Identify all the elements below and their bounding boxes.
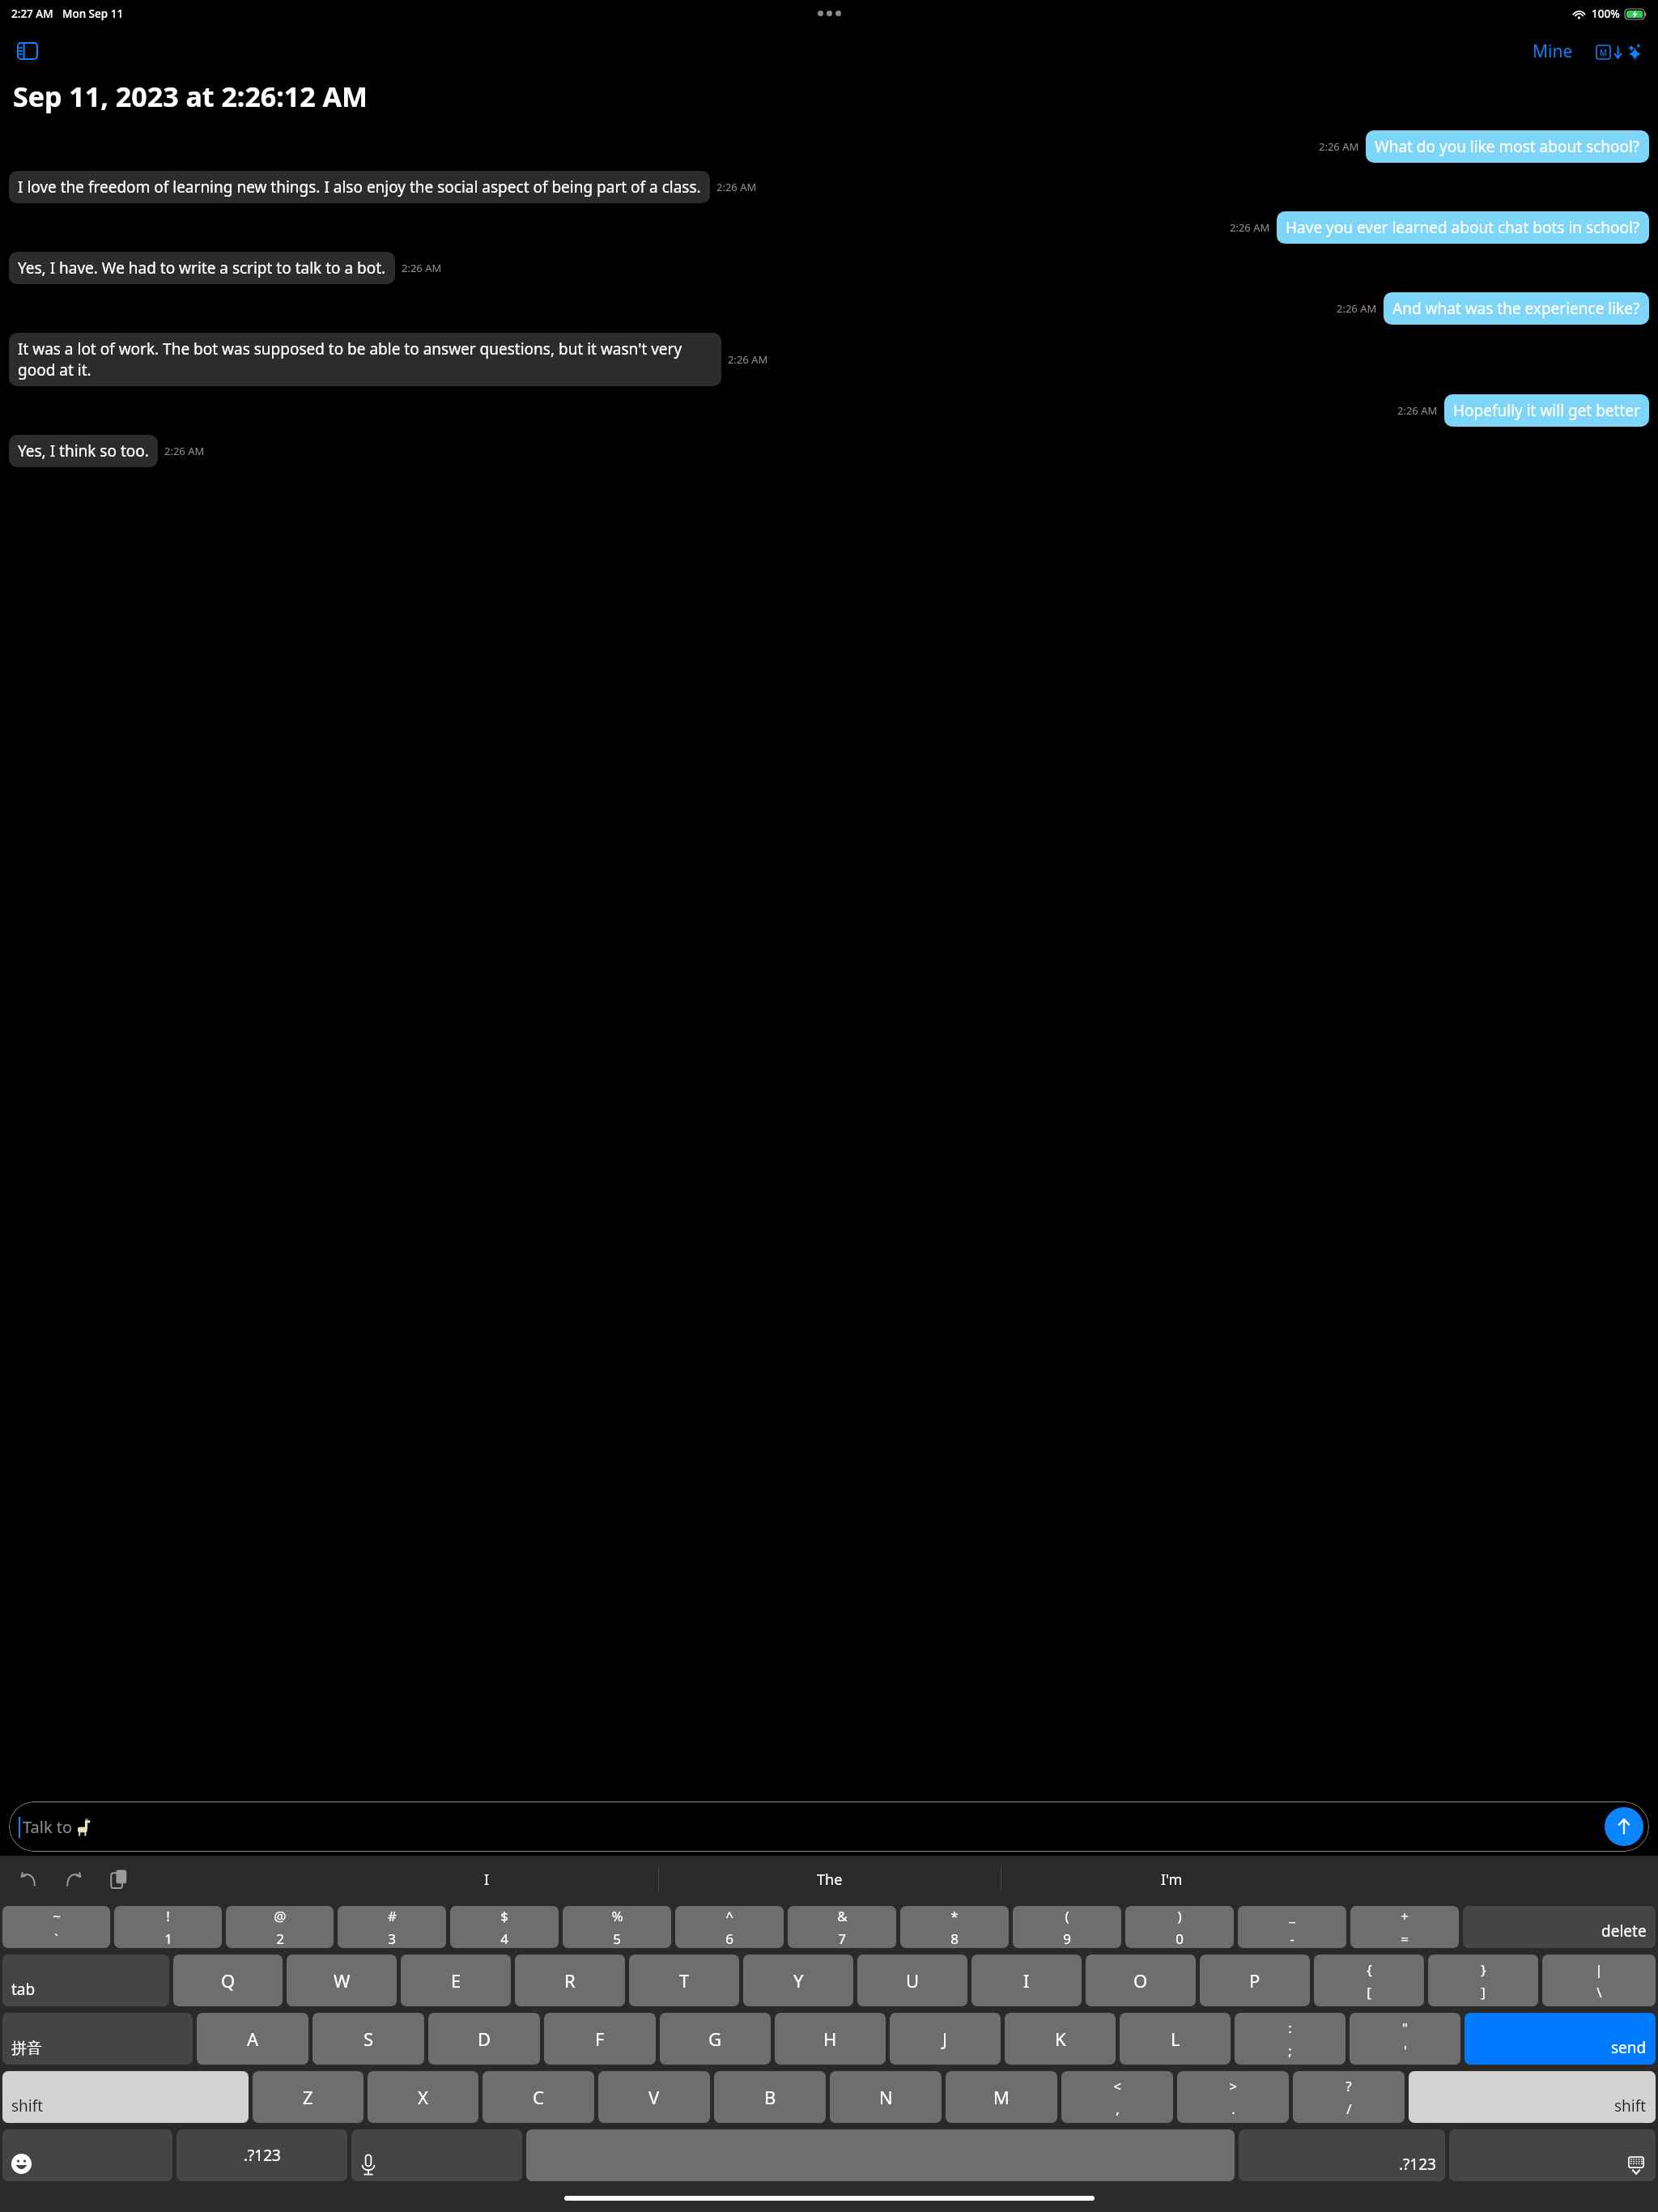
button[interactable]: Show sidebar: [10, 33, 45, 69]
button[interactable]: 2:26 AM: [1319, 130, 1649, 163]
button[interactable]: I: [315, 1856, 658, 1903]
button[interactable]: [526, 2129, 1235, 2181]
button[interactable]: G: [660, 2013, 771, 2065]
button[interactable]: &: [788, 1906, 896, 1948]
button[interactable]: C: [483, 2071, 594, 2123]
button[interactable]: <: [1061, 2071, 1173, 2123]
button[interactable]: .?123: [1239, 2129, 1445, 2181]
button[interactable]: U: [857, 1955, 967, 2006]
button[interactable]: E: [401, 1955, 511, 2006]
button[interactable]: ~: [2, 1906, 110, 1948]
button[interactable]: I: [971, 1955, 1082, 2006]
button[interactable]: kbd: [1449, 2129, 1656, 2181]
staticText: !: [166, 1907, 170, 1925]
button[interactable]: Talk to: [9, 1802, 1649, 1852]
button[interactable]: H: [775, 2013, 886, 2065]
staticText: ;: [1288, 2041, 1292, 2060]
button[interactable]: P: [1200, 1955, 1310, 2006]
button[interactable]: +: [1350, 1906, 1459, 1948]
staticText: 0: [1175, 1929, 1184, 1948]
button[interactable]: A: [197, 2013, 308, 2065]
button[interactable]: delete: [1463, 1906, 1656, 1948]
button[interactable]: F: [544, 2013, 656, 2065]
button[interactable]: >: [1177, 2071, 1289, 2123]
staticText: {: [1367, 1960, 1372, 1979]
button[interactable]: ": [1350, 2013, 1460, 2065]
button[interactable]: $: [450, 1906, 559, 1948]
button[interactable]: Yes, I have. We had to write a script to…: [9, 252, 442, 284]
staticText: W: [334, 1968, 351, 1993]
button[interactable]: shift: [2, 2071, 249, 2123]
staticText: Yes, I have. We had to write a script to…: [18, 257, 386, 279]
button[interactable]: !: [114, 1906, 222, 1948]
button[interactable]: ?: [1293, 2071, 1405, 2123]
button[interactable]: N: [830, 2071, 942, 2123]
staticText: Mine: [1533, 40, 1573, 63]
button[interactable]: mic: [351, 2129, 522, 2181]
staticText: C: [533, 2085, 544, 2109]
button[interactable]: _: [1238, 1906, 1346, 1948]
button[interactable]: V: [598, 2071, 710, 2123]
staticText: ~: [53, 1907, 61, 1925]
button[interactable]: ^: [675, 1906, 784, 1948]
button[interactable]: The: [658, 1856, 1001, 1903]
staticText: F: [595, 2027, 605, 2051]
button[interactable]: K: [1005, 2013, 1116, 2065]
button[interactable]: ): [1125, 1906, 1234, 1948]
button[interactable]: Send: [1605, 1807, 1643, 1846]
button[interactable]: *: [900, 1906, 1009, 1948]
button[interactable]: S: [312, 2013, 424, 2065]
button[interactable]: L: [1120, 2013, 1231, 2065]
staticText: P: [1249, 1968, 1261, 1993]
staticText: .?123: [1399, 2154, 1436, 2175]
button[interactable]: 拼音: [2, 2013, 193, 2065]
button[interactable]: Markdown download and sparkle: [1592, 40, 1647, 64]
staticText: 8: [950, 1929, 959, 1948]
staticText: 拼音: [11, 2039, 42, 2058]
button[interactable]: B: [714, 2071, 826, 2123]
button[interactable]: :: [1235, 2013, 1346, 2065]
button[interactable]: 2:26 AM: [1230, 211, 1649, 244]
staticText: I love the freedom of learning new thing…: [18, 177, 701, 198]
button[interactable]: 2:26 AM: [1397, 394, 1649, 427]
button[interactable]: #: [338, 1906, 446, 1948]
button[interactable]: send: [1465, 2013, 1656, 2065]
button[interactable]: Z: [253, 2071, 363, 2123]
button[interactable]: It was a lot of work. The bot was suppos…: [9, 333, 768, 386]
button[interactable]: I love the freedom of learning new thing…: [9, 171, 757, 203]
button[interactable]: 2:26 AM: [1337, 292, 1649, 325]
button[interactable]: T: [629, 1955, 739, 2006]
button[interactable]: M: [946, 2071, 1057, 2123]
button[interactable]: X: [368, 2071, 478, 2123]
button[interactable]: O: [1086, 1955, 1196, 2006]
button[interactable]: }: [1428, 1955, 1538, 2006]
button[interactable]: J: [890, 2013, 1001, 2065]
button[interactable]: W: [287, 1955, 397, 2006]
button[interactable]: R: [515, 1955, 625, 2006]
button[interactable]: Redo: [62, 1867, 86, 1891]
staticText: @: [274, 1907, 287, 1925]
button[interactable]: @: [226, 1906, 334, 1948]
staticText: G: [708, 2027, 722, 2051]
button[interactable]: (: [1013, 1906, 1121, 1948]
staticText: delete: [1601, 1921, 1647, 1942]
button[interactable]: |: [1542, 1955, 1656, 2006]
button[interactable]: Y: [743, 1955, 853, 2006]
button[interactable]: emoji: [2, 2129, 172, 2181]
button[interactable]: D: [428, 2013, 540, 2065]
button[interactable]: Paste: [107, 1867, 131, 1891]
button[interactable]: tab: [2, 1955, 169, 2006]
button[interactable]: .?123: [176, 2129, 347, 2181]
button[interactable]: I'm: [1001, 1856, 1343, 1903]
button[interactable]: %: [563, 1906, 671, 1948]
staticText: >: [1229, 2077, 1237, 2095]
button[interactable]: Q: [173, 1955, 283, 2006]
button[interactable]: Undo: [16, 1867, 40, 1891]
button[interactable]: {: [1314, 1955, 1424, 2006]
staticText: 2:26 AM: [728, 352, 768, 367]
button[interactable]: Yes, I think so too.: [9, 435, 205, 467]
button[interactable]: shift: [1409, 2071, 1656, 2123]
staticText: N: [879, 2085, 893, 2109]
staticText: What do you like most about school?: [1375, 136, 1640, 157]
button[interactable]: Mine: [1528, 35, 1578, 68]
